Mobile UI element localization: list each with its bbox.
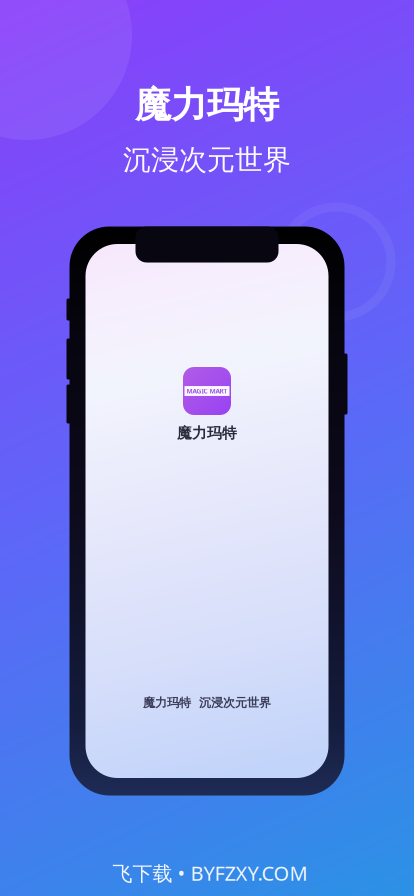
staticText: MAGIC MART xyxy=(186,387,227,395)
staticText: 沉浸次元世界 xyxy=(123,143,291,177)
staticText: 飞下载 • BYFZXY.COM xyxy=(112,860,307,886)
staticText: 魔力玛特 沉浸次元世界 xyxy=(143,695,271,710)
staticText: 魔力玛特 xyxy=(177,424,237,442)
staticText: 魔力玛特 xyxy=(135,83,279,127)
